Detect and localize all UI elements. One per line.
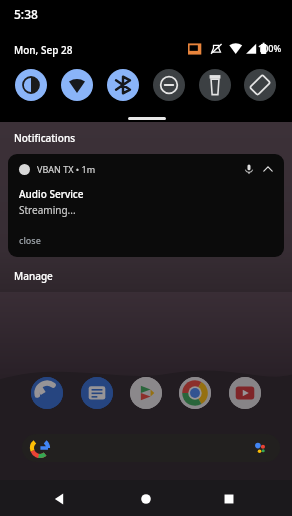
staticText: Audio Service — [19, 187, 84, 201]
button[interactable]: YouTube — [229, 377, 261, 409]
button[interactable]: Quick setting — [107, 69, 139, 101]
button[interactable]: close — [19, 234, 41, 246]
button[interactable]: Home — [138, 491, 154, 507]
button[interactable]: Back — [52, 491, 68, 507]
button[interactable]: Quick setting — [244, 69, 276, 101]
button[interactable]: Phone — [31, 377, 63, 409]
staticText: Streaming... — [19, 203, 76, 217]
button[interactable]: Collapse notification — [261, 162, 275, 176]
staticText: VBAN TX • 1m — [37, 163, 96, 175]
button[interactable]: VBAN TX • 1m — [8, 154, 284, 257]
staticText: Notifications — [14, 131, 76, 145]
button[interactable]: Messages — [81, 377, 113, 409]
button[interactable]: Quick setting — [153, 69, 185, 101]
button[interactable]: Quick setting — [199, 69, 231, 101]
button[interactable]: Manage — [10, 267, 57, 285]
staticText: 100% — [258, 42, 282, 54]
button[interactable]: Quick setting — [61, 69, 93, 101]
staticText: 5:38 — [14, 6, 38, 22]
button[interactable]: Chrome — [179, 377, 211, 409]
staticText: Mon, Sep 28 — [14, 43, 73, 57]
staticText: Manage — [14, 269, 53, 283]
button[interactable]: Play Store — [130, 377, 162, 409]
staticText: close — [19, 234, 41, 246]
button[interactable]: Google Search — [22, 434, 280, 462]
button[interactable]: Quick setting — [15, 69, 47, 101]
button[interactable]: Expand quick settings — [128, 117, 166, 120]
button[interactable]: Recent apps — [221, 491, 237, 507]
button[interactable]: Microphone — [242, 162, 256, 176]
